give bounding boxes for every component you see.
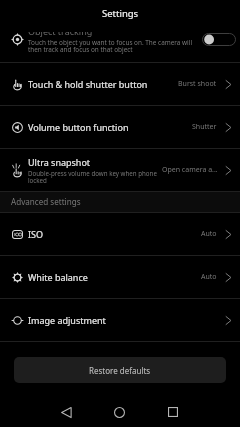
button[interactable]: Recent apps <box>146 397 200 427</box>
staticText: Settings <box>102 7 139 20</box>
button[interactable]: Image adjustment <box>0 299 240 341</box>
staticText: Advanced settings <box>11 196 81 207</box>
staticText: Settings <box>102 7 139 20</box>
staticText: ISO <box>28 228 44 240</box>
button[interactable]: Back <box>40 397 92 427</box>
staticText: Touch the object you want to focus on. T… <box>28 38 194 54</box>
button[interactable]: Object tracking <box>0 19 240 59</box>
staticText: Touch & hold shutter button <box>28 78 148 90</box>
staticText: Ultra snapshot <box>28 156 91 168</box>
button[interactable]: Ultra snapshot <box>0 149 240 191</box>
staticText: Shutter <box>192 122 217 132</box>
button[interactable]: Touch & hold shutter button <box>0 63 240 105</box>
staticText: Image adjustment <box>28 314 106 326</box>
button[interactable]: Home <box>92 397 146 427</box>
button[interactable]: Volume button function <box>0 106 240 148</box>
button[interactable]: ISO <box>0 213 240 255</box>
button[interactable]: White balance <box>0 256 240 298</box>
staticText: White balance <box>28 271 88 283</box>
staticText: Auto <box>201 272 217 282</box>
button[interactable]: Restore defaults <box>14 357 226 383</box>
staticText: Open camera a... <box>162 165 217 175</box>
staticText: Volume button function <box>28 121 129 133</box>
staticText: Double-press volume down key when phone … <box>28 169 159 185</box>
staticText: Burst shoot <box>178 79 217 89</box>
staticText: Auto <box>201 229 217 239</box>
staticText: Restore defaults <box>89 365 151 376</box>
staticText: Object tracking <box>28 25 93 37</box>
